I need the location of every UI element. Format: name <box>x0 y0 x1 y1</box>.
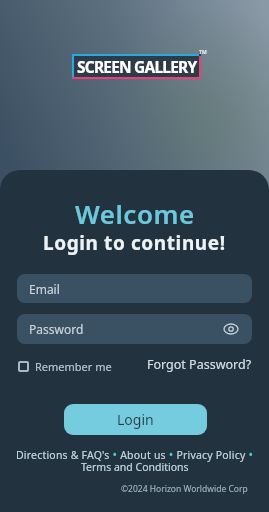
button[interactable]: SCREEN GALLERY <box>72 54 201 79</box>
button[interactable]: Terms and Conditions <box>81 460 189 474</box>
staticText: Email <box>29 281 60 297</box>
button[interactable]: Remember me <box>18 359 112 374</box>
button[interactable]: Forgot Password? <box>147 356 252 373</box>
staticText: Login to continue! <box>43 230 226 256</box>
staticText: Welcome <box>75 196 195 231</box>
staticText: Password <box>29 321 84 337</box>
button[interactable]: Password <box>17 314 252 344</box>
staticText: Remember me <box>35 359 112 374</box>
staticText: Login <box>117 410 154 429</box>
button[interactable]: Directions & FAQ's • About us • Privacy … <box>16 446 254 462</box>
button[interactable]: Login <box>64 404 207 435</box>
staticText: ©2024 Horizon Worldwide Corp <box>121 483 248 495</box>
staticText: SCREEN GALLERY <box>77 56 197 77</box>
button[interactable]: Email <box>17 274 252 303</box>
staticText: TM <box>199 49 207 56</box>
